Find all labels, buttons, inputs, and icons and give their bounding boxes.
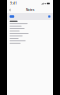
staticText: Notes	[26, 8, 34, 12]
button[interactable]: Back	[9, 8, 12, 12]
button[interactable]: Filter	[10, 15, 14, 18]
button[interactable]: Compose	[48, 15, 50, 18]
staticText: 9:41	[10, 2, 17, 5]
